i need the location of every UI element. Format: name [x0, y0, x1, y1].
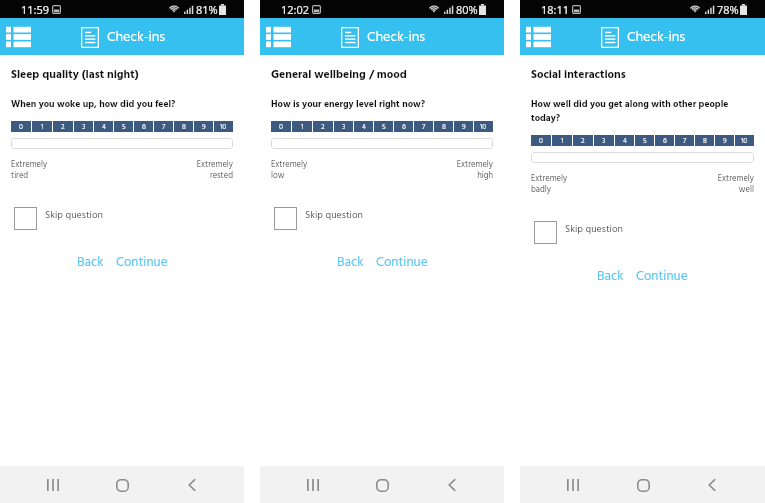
staticText: Check-ins [367, 26, 426, 48]
staticText: 8 [442, 121, 446, 132]
staticText: Extremely well [717, 172, 754, 197]
staticText: Continue [636, 266, 688, 287]
staticText: 18:11 [541, 2, 570, 17]
staticText: 80% [456, 2, 478, 17]
button[interactable]: 8 [174, 121, 193, 132]
button[interactable]: Back [695, 468, 729, 502]
button[interactable]: Home [626, 468, 660, 502]
button[interactable]: 1 [32, 121, 52, 132]
button[interactable]: 1 [552, 135, 572, 146]
button[interactable]: 8 [695, 135, 714, 146]
button[interactable]: Open navigation menu [2, 22, 34, 52]
staticText: Continue [116, 252, 168, 273]
button[interactable]: 9 [715, 135, 734, 146]
staticText: How is your energy level right now? [271, 97, 426, 112]
button[interactable]: 9 [454, 121, 473, 132]
staticText: 10 [741, 135, 748, 146]
button[interactable]: 6 [394, 121, 413, 132]
staticText: 7 [422, 121, 426, 132]
staticText: 3 [82, 121, 86, 132]
button[interactable]: Home [105, 468, 139, 502]
button[interactable]: Recent apps [36, 468, 70, 502]
button[interactable]: 5 [374, 121, 393, 132]
staticText: 10 [220, 121, 227, 132]
button[interactable]: Home [365, 468, 399, 502]
button[interactable]: 4 [354, 121, 373, 132]
staticText: 1 [561, 135, 564, 146]
staticText: 3 [602, 135, 606, 146]
staticText: 12:02 [281, 2, 310, 17]
button[interactable]: Back [75, 252, 106, 273]
button[interactable]: Open navigation menu [262, 22, 294, 52]
button[interactable]: 5 [635, 135, 654, 146]
staticText: 4 [623, 135, 627, 146]
staticText: Extremely low [271, 158, 308, 183]
button[interactable]: Skip question [531, 221, 623, 244]
staticText: 4 [362, 121, 366, 132]
button[interactable]: 0 [11, 121, 31, 132]
staticText: 1 [41, 121, 44, 132]
staticText: 9 [462, 121, 466, 132]
staticText: 5 [643, 135, 647, 146]
staticText: 4 [102, 121, 106, 132]
button[interactable]: 5 [114, 121, 133, 132]
button[interactable]: Skip question [11, 207, 103, 230]
button[interactable]: 2 [313, 121, 333, 132]
button[interactable]: 10 [474, 121, 493, 132]
button[interactable]: 7 [675, 135, 694, 146]
button[interactable]: 7 [154, 121, 173, 132]
staticText: Skip question [305, 207, 363, 223]
staticText: 81% [196, 2, 218, 17]
button[interactable]: 1 [292, 121, 312, 132]
button[interactable]: Back [175, 468, 209, 502]
staticText: Back [77, 252, 104, 273]
button[interactable]: Back [335, 252, 366, 273]
staticText: 6 [142, 121, 146, 132]
button[interactable]: Recent apps [556, 468, 590, 502]
staticText: Extremely tired [11, 158, 48, 183]
button[interactable]: Skip question [271, 207, 363, 230]
button[interactable]: Continue [114, 252, 170, 273]
button[interactable]: Back [435, 468, 469, 502]
button[interactable] [271, 138, 493, 149]
staticText: 2 [581, 135, 585, 146]
staticText: 0 [539, 135, 543, 146]
button[interactable] [531, 152, 754, 163]
button[interactable]: 6 [655, 135, 674, 146]
button[interactable]: Continue [634, 266, 690, 287]
staticText: 1 [301, 121, 304, 132]
staticText: Back [337, 252, 364, 273]
button[interactable]: Back [595, 266, 626, 287]
staticText: 6 [402, 121, 406, 132]
staticText: How well did you get along with other pe… [531, 97, 754, 126]
staticText: Extremely rested [196, 158, 233, 183]
staticText: Extremely badly [531, 172, 568, 197]
staticText: 7 [683, 135, 687, 146]
button[interactable]: 8 [434, 121, 453, 132]
button[interactable]: Open navigation menu [522, 22, 554, 52]
staticText: 78% [717, 2, 739, 17]
button[interactable]: 3 [594, 135, 614, 146]
button[interactable]: 6 [134, 121, 153, 132]
button[interactable]: 10 [735, 135, 754, 146]
button[interactable]: 3 [334, 121, 353, 132]
button[interactable] [11, 138, 233, 149]
button[interactable]: 9 [194, 121, 213, 132]
button[interactable]: 4 [94, 121, 113, 132]
button[interactable]: 7 [414, 121, 433, 132]
button[interactable]: 2 [573, 135, 593, 146]
button[interactable]: 0 [531, 135, 551, 146]
button[interactable]: Continue [374, 252, 430, 273]
button[interactable]: 2 [53, 121, 73, 132]
button[interactable]: 3 [74, 121, 93, 132]
staticText: 6 [663, 135, 667, 146]
button[interactable]: 0 [271, 121, 291, 132]
button[interactable]: 4 [615, 135, 634, 146]
staticText: 11:59 [21, 2, 50, 17]
staticText: Back [597, 266, 624, 287]
button[interactable]: Recent apps [296, 468, 330, 502]
staticText: 9 [723, 135, 727, 146]
staticText: 2 [61, 121, 65, 132]
button[interactable]: 10 [214, 121, 233, 132]
staticText: 8 [182, 121, 186, 132]
